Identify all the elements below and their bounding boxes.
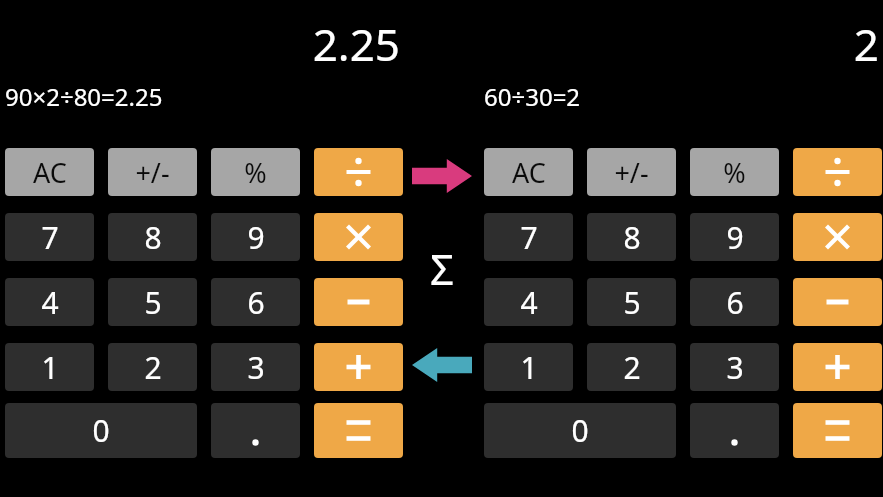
staticText: 1 <box>520 347 538 388</box>
button[interactable]: 2 <box>108 343 197 391</box>
button[interactable]: Multiply <box>314 213 403 261</box>
button[interactable]: Plus <box>793 343 882 391</box>
staticText: % <box>723 154 746 191</box>
button[interactable]: % <box>211 148 300 196</box>
staticText: 2 <box>623 347 641 388</box>
staticText: 6 <box>247 282 265 323</box>
staticText: 7 <box>41 217 59 258</box>
button[interactable]: % <box>690 148 779 196</box>
button[interactable]: 8 <box>587 213 676 261</box>
button[interactable]: 8 <box>108 213 197 261</box>
button[interactable]: 5 <box>587 278 676 326</box>
button[interactable]: 5 <box>108 278 197 326</box>
button[interactable]: Divide <box>314 148 403 196</box>
button[interactable]: 0 <box>5 403 197 458</box>
button[interactable]: 9 <box>211 213 300 261</box>
staticText: % <box>244 154 267 191</box>
staticText: AC <box>512 154 546 191</box>
button[interactable]: Minus <box>314 278 403 326</box>
button[interactable]: +/- <box>587 148 676 196</box>
button[interactable]: 7 <box>484 213 573 261</box>
staticText: 9 <box>247 217 265 258</box>
button[interactable]: Equals <box>793 403 882 458</box>
button[interactable]: 4 <box>5 278 94 326</box>
staticText: 3 <box>726 347 744 388</box>
staticText: 4 <box>41 282 59 323</box>
staticText: 0 <box>571 410 589 451</box>
staticText: +/- <box>135 154 170 191</box>
staticText: 4 <box>520 282 538 323</box>
button[interactable]: 4 <box>484 278 573 326</box>
button[interactable]: 3 <box>211 343 300 391</box>
staticText: 1 <box>41 347 59 388</box>
button[interactable]: Decimal point <box>211 403 300 458</box>
button[interactable]: 9 <box>690 213 779 261</box>
staticText: 9 <box>726 217 744 258</box>
button[interactable]: Equals <box>314 403 403 458</box>
staticText: AC <box>33 154 67 191</box>
button[interactable]: 1 <box>5 343 94 391</box>
button[interactable]: Divide <box>793 148 882 196</box>
staticText: 8 <box>623 217 641 258</box>
button[interactable]: Copy value to left calculator <box>412 348 472 382</box>
button[interactable]: 2 <box>587 343 676 391</box>
button[interactable]: 3 <box>690 343 779 391</box>
button[interactable]: AC <box>484 148 573 196</box>
staticText: 90×2÷80=2.25 <box>5 80 163 110</box>
button[interactable]: Plus <box>314 343 403 391</box>
button[interactable]: Σ <box>415 240 469 294</box>
staticText: +/- <box>614 154 649 191</box>
button[interactable]: Multiply <box>793 213 882 261</box>
staticText: 5 <box>623 282 641 323</box>
button[interactable]: 6 <box>211 278 300 326</box>
button[interactable]: 0 <box>484 403 676 458</box>
button[interactable]: Minus <box>793 278 882 326</box>
button[interactable]: 7 <box>5 213 94 261</box>
button[interactable]: 1 <box>484 343 573 391</box>
button[interactable]: +/- <box>108 148 197 196</box>
button[interactable]: Copy value to right calculator <box>412 159 472 193</box>
staticText: 0 <box>92 410 110 451</box>
staticText: 2 <box>853 14 879 64</box>
staticText: 2 <box>144 347 162 388</box>
button[interactable]: AC <box>5 148 94 196</box>
staticText: 60÷30=2 <box>484 80 581 110</box>
staticText: Σ <box>430 240 455 294</box>
staticText: 3 <box>247 347 265 388</box>
staticText: 6 <box>726 282 744 323</box>
staticText: 7 <box>520 217 538 258</box>
staticText: 8 <box>144 217 162 258</box>
staticText: 5 <box>144 282 162 323</box>
button[interactable]: 6 <box>690 278 779 326</box>
staticText: 2.25 <box>312 14 400 64</box>
button[interactable]: Decimal point <box>690 403 779 458</box>
